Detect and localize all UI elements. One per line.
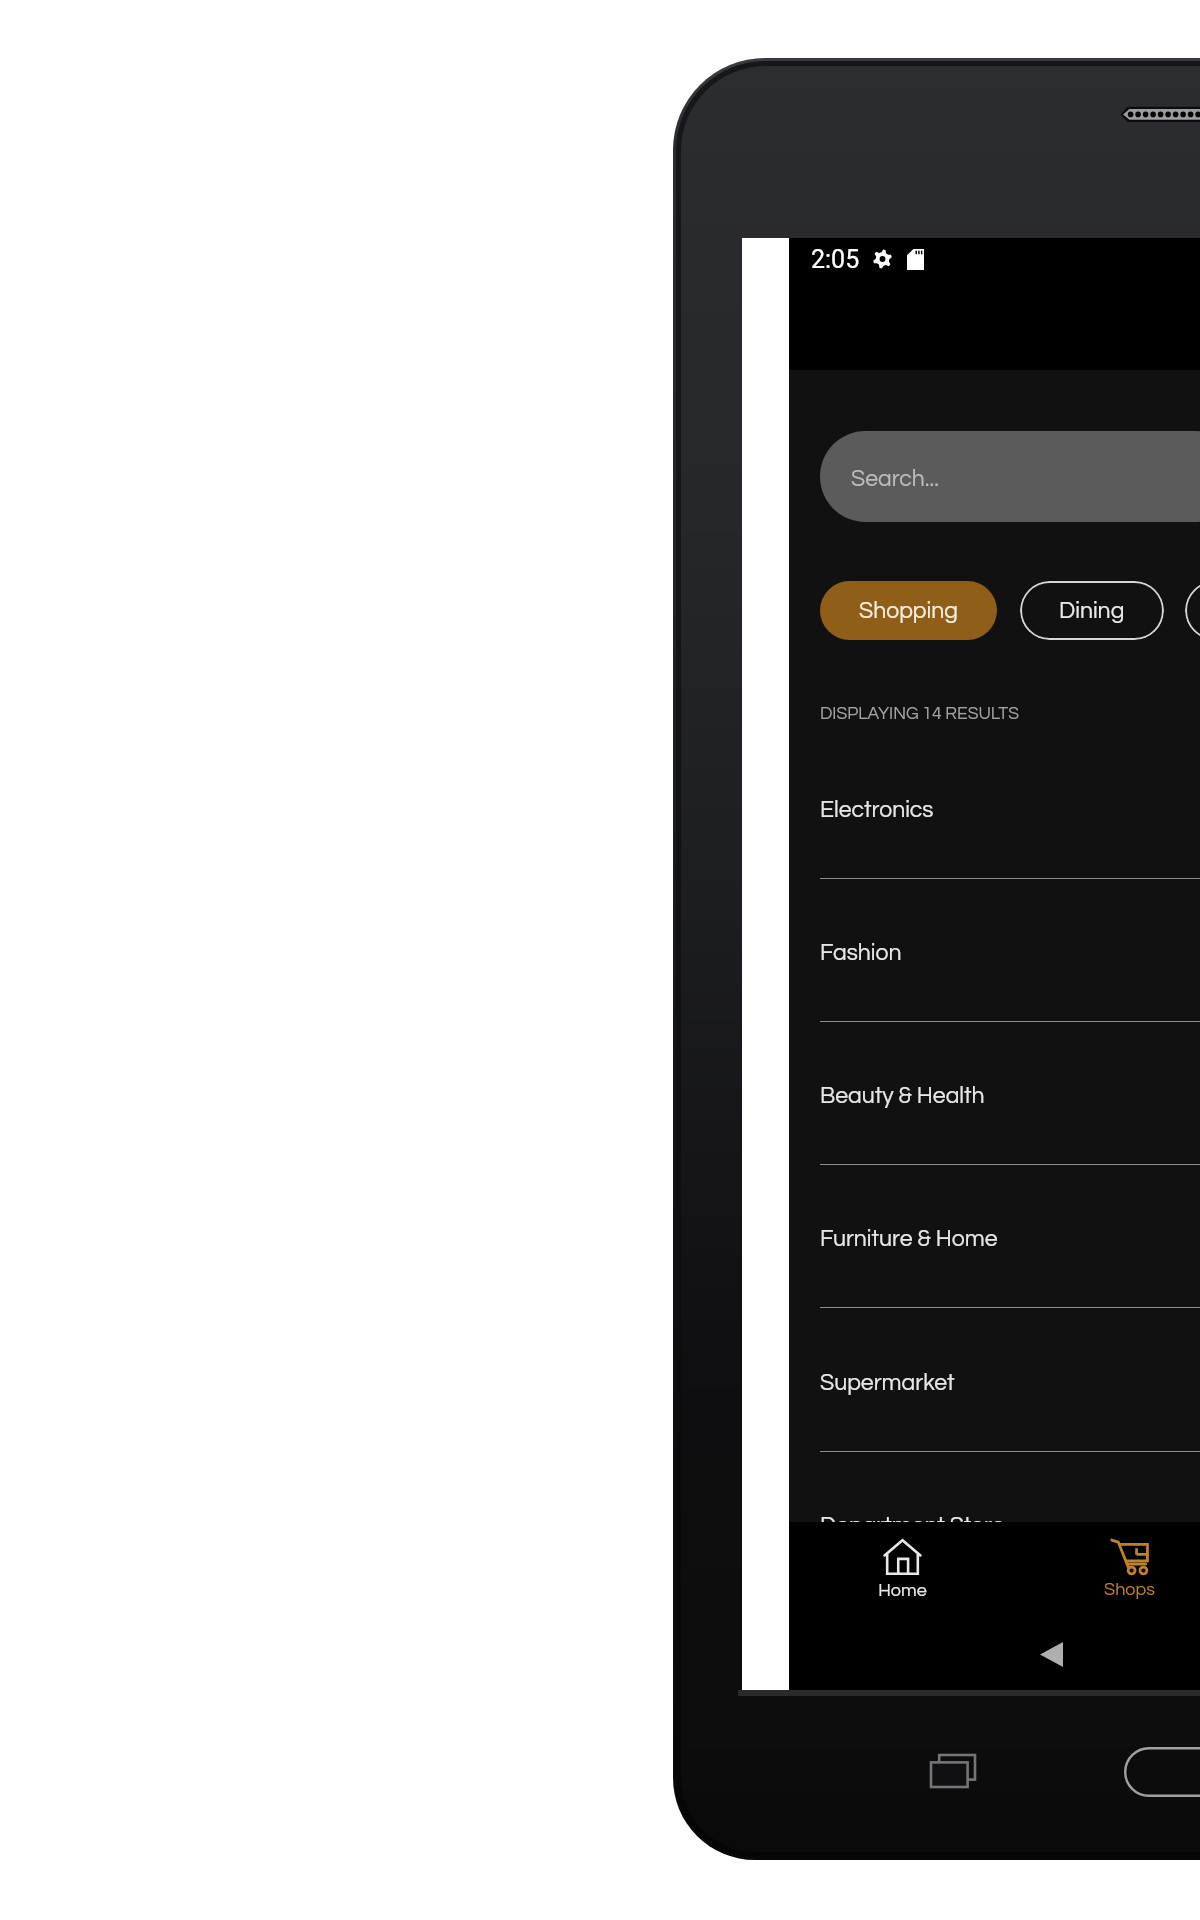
button[interactable]: Shopping — [820, 581, 997, 640]
button[interactable]: Department Store — [789, 1451, 1200, 1594]
staticText: Beauty & Health — [820, 1084, 985, 1108]
button[interactable]: Back — [1035, 1638, 1068, 1671]
staticText: Electronics — [820, 798, 934, 822]
button[interactable]: Shops — [1016, 1522, 1200, 1690]
staticText: Home — [878, 1581, 927, 1600]
staticText: Dining — [1059, 599, 1125, 623]
other: Shops — [1111, 1539, 1148, 1574]
staticText: Furniture & Home — [820, 1227, 998, 1251]
button[interactable]: Home — [789, 1522, 1016, 1690]
button[interactable]: Services — [1185, 581, 1200, 640]
staticText: Shopping — [859, 599, 958, 623]
button[interactable]: Beauty & Health — [789, 1021, 1200, 1164]
button[interactable]: Home button — [1124, 1747, 1200, 1797]
staticText: Shops — [1104, 1580, 1155, 1599]
staticText: 2:05 — [811, 245, 860, 274]
staticText: Fashion — [820, 941, 902, 965]
other: Home — [884, 1539, 921, 1575]
button[interactable]: Recent apps — [931, 1755, 975, 1787]
button[interactable]: Supermarket — [789, 1308, 1200, 1451]
staticText: Supermarket — [820, 1371, 955, 1395]
staticText: Department Store — [820, 1514, 1005, 1538]
button[interactable]: Search... — [820, 431, 1200, 522]
button[interactable]: Dining — [1020, 581, 1164, 640]
button[interactable]: Fashion — [789, 878, 1200, 1021]
button[interactable]: Furniture & Home — [789, 1164, 1200, 1307]
staticText: Search... — [851, 467, 939, 491]
button[interactable]: Electronics — [789, 735, 1200, 878]
staticText: DISPLAYING 14 RESULTS — [820, 705, 1019, 723]
